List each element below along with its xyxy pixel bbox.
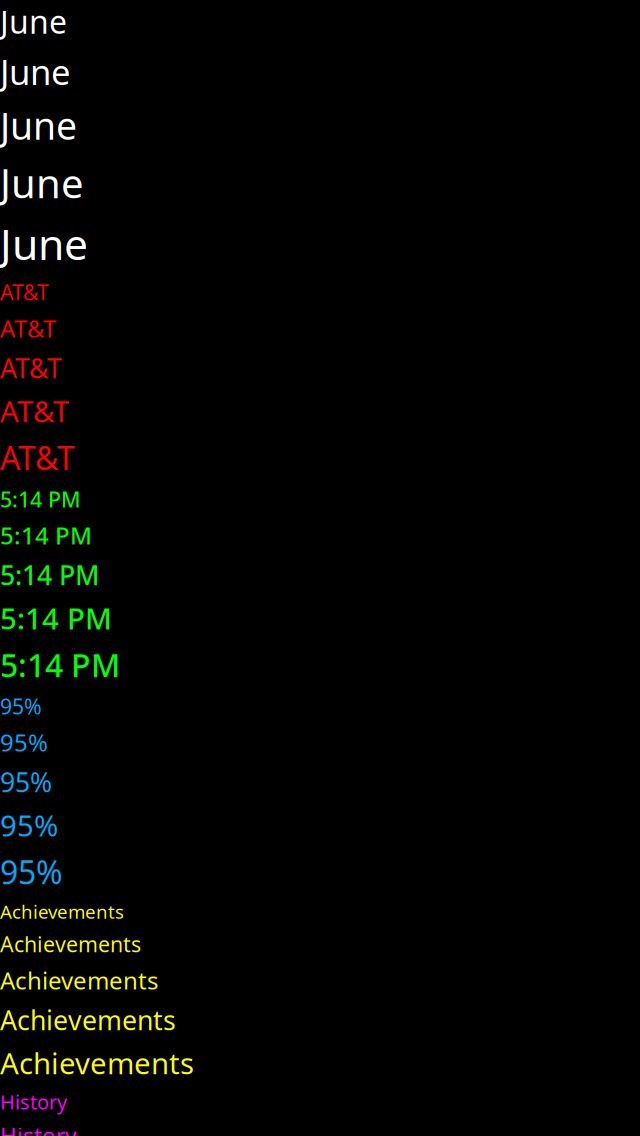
staticText: 95% [0,806,58,845]
staticText: 5:14 PM [0,485,81,513]
staticText: Achievements [0,930,141,958]
staticText: AT&T [0,312,56,344]
staticText: Achievements [0,1043,194,1082]
staticText: 5:14 PM [0,519,92,551]
staticText: June [0,48,71,94]
staticText: 95% [0,692,42,720]
staticText: June [0,0,67,42]
staticText: 5:14 PM [0,643,120,686]
staticText: 95% [0,764,52,800]
staticText: June [0,215,88,272]
staticText: Achievements [0,1002,176,1037]
staticText: Achievements [0,964,158,996]
staticText: June [0,156,84,209]
staticText: 5:14 PM [0,599,112,638]
staticText: AT&T [0,391,69,430]
staticText: 95% [0,726,48,758]
staticText: AT&T [0,278,49,306]
staticText: AT&T [0,436,75,479]
staticText: June [0,100,77,150]
staticText: 5:14 PM [0,557,99,593]
staticText: History [0,1088,67,1115]
staticText: History [0,1121,77,1136]
staticText: Achievements [0,899,124,924]
staticText: AT&T [0,350,62,385]
staticText: 95% [0,851,63,893]
